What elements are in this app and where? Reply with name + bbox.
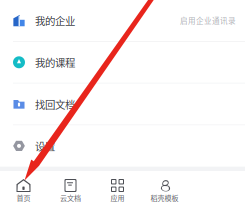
staticText: 我的课程: [35, 55, 75, 70]
button[interactable]: 稻壳模板: [141, 171, 188, 205]
button[interactable]: 云文档: [47, 171, 94, 205]
staticText: 设置: [35, 138, 55, 153]
staticText: 启用企业通讯录: [180, 15, 236, 26]
staticText: 应用: [110, 192, 124, 203]
button[interactable]: 我的课程: [0, 42, 245, 83]
staticText: 我的企业: [35, 13, 75, 28]
button[interactable]: 应用: [94, 171, 141, 205]
staticText: 稻壳模板: [150, 192, 178, 203]
button[interactable]: 设置: [0, 125, 245, 166]
button[interactable]: 我的企业: [0, 0, 245, 41]
staticText: 首页: [16, 192, 30, 203]
staticText: 找回文档: [35, 97, 75, 112]
staticText: 云文档: [60, 192, 81, 203]
button[interactable]: 找回文档: [0, 84, 245, 125]
button[interactable]: 首页: [0, 171, 47, 205]
